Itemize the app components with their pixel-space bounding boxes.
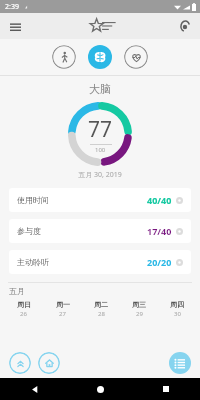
button[interactable]: Heart [124,45,148,69]
staticText: 29 [136,310,143,318]
staticText: 77 [88,115,113,144]
button[interactable]: 周四 [158,300,196,318]
button[interactable]: Recents [158,381,174,397]
staticText: 17/40 [147,225,172,237]
button[interactable]: 周二 [82,300,120,318]
button[interactable]: Brain [88,45,112,69]
button[interactable]: Menu [4,15,26,37]
staticText: 周日 [17,300,31,309]
staticText: 27 [59,310,66,318]
staticText: 周二 [94,300,108,309]
button[interactable]: Profile [176,16,196,36]
button[interactable]: Scroll up [9,352,31,374]
button[interactable]: 参与度 [9,219,191,243]
button[interactable]: Home [92,381,108,397]
button[interactable]: 主动聆听 [9,250,191,274]
staticText: 大脑 [0,82,200,96]
button[interactable]: Home [38,352,60,374]
staticText: 周三 [132,300,146,309]
staticText: 周一 [56,300,70,309]
button[interactable]: 周一 [43,300,82,318]
staticText: 参与度 [17,226,41,236]
staticText: 40/40 [147,194,172,206]
staticText: 周四 [170,300,184,309]
button[interactable]: 使用时间 [9,188,191,212]
button[interactable]: 周三 [120,300,158,318]
staticText: 使用时间 [17,195,49,205]
staticText: 100 [95,146,106,154]
button[interactable]: 周日 [4,300,43,318]
staticText: 28 [98,310,105,318]
button[interactable]: Back [26,381,42,397]
staticText: 2:39 [5,2,19,12]
staticText: 五月 [9,286,25,296]
staticText: 20/20 [147,256,172,268]
button[interactable]: List [169,352,191,374]
staticText: 30 [174,310,181,318]
staticText: 五月 30, 2019 [0,170,200,180]
staticText: 26 [20,310,27,318]
button[interactable]: Activity [52,45,76,69]
staticText: 主动聆听 [17,257,49,267]
